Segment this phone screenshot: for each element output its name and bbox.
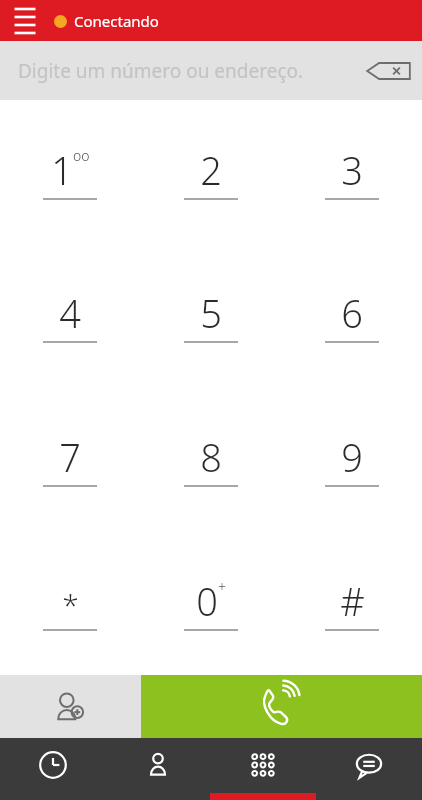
- button[interactable]: *: [0, 531, 140, 675]
- staticText: Conectando: [74, 11, 159, 31]
- button[interactable]: 2: [140, 100, 281, 243]
- staticText: #: [340, 575, 365, 621]
- staticText: Digite um número ou endereço.: [18, 58, 304, 84]
- button[interactable]: Call: [141, 675, 422, 738]
- staticText: 4: [59, 287, 81, 333]
- staticText: +: [218, 577, 226, 596]
- button[interactable]: Digite um número ou endereço.: [0, 41, 422, 100]
- button[interactable]: 5: [140, 243, 281, 387]
- staticText: 2: [200, 144, 222, 190]
- staticText: 8: [200, 431, 222, 477]
- staticText: 9: [341, 431, 363, 477]
- button[interactable]: 8: [140, 387, 281, 531]
- staticText: 1: [51, 144, 73, 190]
- staticText: 0: [196, 575, 218, 621]
- button[interactable]: Recents: [0, 738, 105, 800]
- button[interactable]: 1: [0, 100, 140, 243]
- button[interactable]: Dialpad: [210, 738, 316, 800]
- button[interactable]: 7: [0, 387, 140, 531]
- button[interactable]: 4: [0, 243, 140, 387]
- staticText: 3: [341, 144, 363, 190]
- staticText: *: [62, 584, 79, 625]
- staticText: 6: [341, 287, 363, 333]
- button[interactable]: 9: [281, 387, 422, 531]
- button[interactable]: Messages: [316, 738, 422, 800]
- button[interactable]: Contacts: [105, 738, 210, 800]
- button[interactable]: Add contact: [0, 675, 141, 738]
- staticText: 5: [200, 287, 222, 333]
- button[interactable]: 0: [140, 531, 281, 675]
- button[interactable]: 6: [281, 243, 422, 387]
- button[interactable]: Menu: [6, 2, 44, 40]
- button[interactable]: 3: [281, 100, 422, 243]
- staticText: 7: [59, 431, 81, 477]
- button[interactable]: Backspace: [362, 51, 414, 91]
- staticText: oo: [73, 146, 90, 165]
- button[interactable]: #: [281, 531, 422, 675]
